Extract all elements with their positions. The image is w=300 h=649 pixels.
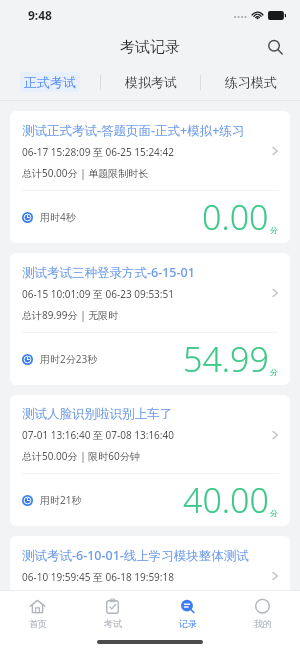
button[interactable]: 模拟考试 bbox=[101, 64, 200, 100]
staticText: 测试人脸识别啦识别上车了 bbox=[22, 406, 172, 422]
button[interactable]: 测试正式考试-答题页面-正式+模拟+练习 bbox=[10, 111, 290, 243]
staticText: 40.00 bbox=[183, 477, 269, 523]
staticText: 分 bbox=[270, 225, 278, 235]
staticText: 正式考试 bbox=[24, 74, 76, 90]
staticText: 总计50.00分 | 单题限制时长 bbox=[22, 166, 149, 180]
staticText: 06-10 19:59:45 至 06-18 19:59:18 bbox=[22, 570, 174, 584]
button[interactable]: 记录 bbox=[150, 591, 225, 635]
staticText: 总计89.99分 | 无限时 bbox=[22, 308, 119, 322]
button[interactable]: 测试考试三种登录方式-6-15-01 bbox=[10, 253, 290, 385]
staticText: 06-15 10:01:09 至 06-23 09:53:51 bbox=[22, 287, 174, 301]
staticText: 用时2分23秒 bbox=[40, 352, 98, 366]
staticText: 我的 bbox=[254, 618, 272, 629]
staticText: 考试 bbox=[104, 618, 122, 629]
staticText: 首页 bbox=[29, 618, 47, 629]
staticText: 总计50.00分 | 限时60分钟 bbox=[22, 449, 140, 463]
staticText: 练习模式 bbox=[225, 74, 277, 90]
staticText: 模拟考试 bbox=[125, 74, 177, 90]
button[interactable]: 测试人脸识别啦识别上车了 bbox=[10, 395, 290, 526]
staticText: 用时21秒 bbox=[40, 493, 82, 507]
staticText: 用时4秒 bbox=[40, 210, 76, 224]
staticText: 测试考试-6-10-01-线上学习模块整体测试 bbox=[22, 547, 249, 564]
staticText: 9:48 bbox=[28, 7, 52, 23]
button[interactable]: 测试考试-6-10-01-线上学习模块整体测试 bbox=[10, 536, 290, 590]
staticText: 分 bbox=[270, 508, 278, 518]
staticText: 54.99 bbox=[183, 336, 269, 382]
button[interactable]: 我的 bbox=[225, 591, 300, 635]
button[interactable]: Search bbox=[258, 30, 292, 64]
button[interactable]: 首页 bbox=[0, 591, 75, 635]
staticText: 测试正式考试-答题页面-正式+模拟+练习 bbox=[22, 122, 245, 139]
staticText: 0.00 bbox=[202, 194, 269, 240]
staticText: 06-17 15:28:09 至 06-25 15:24:42 bbox=[22, 145, 174, 159]
button[interactable]: 正式考试 bbox=[0, 64, 100, 100]
staticText: 07-01 13:16:40 至 07-08 13:16:40 bbox=[22, 428, 174, 442]
button[interactable]: 考试 bbox=[75, 591, 150, 635]
button[interactable]: 练习模式 bbox=[201, 64, 300, 100]
staticText: 分 bbox=[270, 367, 278, 377]
staticText: 测试考试三种登录方式-6-15-01 bbox=[22, 264, 195, 281]
staticText: 记录 bbox=[179, 618, 197, 629]
staticText: 考试记录 bbox=[120, 38, 180, 57]
